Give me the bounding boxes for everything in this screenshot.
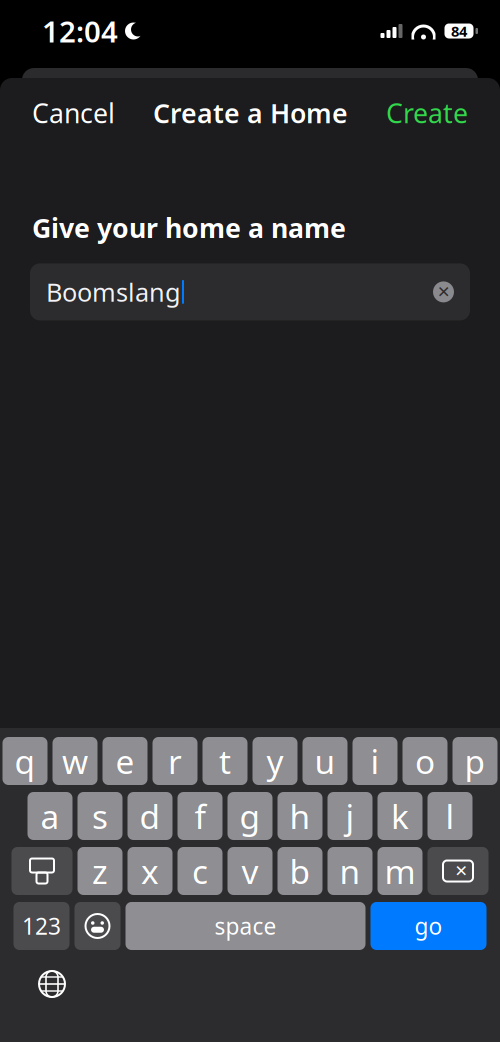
staticText: Boomslang <box>46 275 181 309</box>
button[interactable]: t <box>202 737 247 785</box>
staticText: go <box>414 911 442 941</box>
button[interactable]: Shift <box>11 847 72 895</box>
button[interactable]: Cancel <box>22 87 125 139</box>
button[interactable]: l <box>427 792 472 840</box>
staticText: b <box>289 849 310 893</box>
staticText: r <box>168 739 182 783</box>
staticText: ✕ <box>454 862 467 880</box>
button[interactable]: s <box>77 792 122 840</box>
staticText: ✕ <box>437 283 450 301</box>
staticText: i <box>370 739 379 783</box>
button[interactable]: o <box>402 737 447 785</box>
button[interactable]: b <box>277 847 322 895</box>
button[interactable]: p <box>452 737 497 785</box>
button[interactable]: g <box>227 792 272 840</box>
button[interactable]: Emoji <box>74 902 120 950</box>
staticText: z <box>92 849 108 893</box>
button[interactable]: h <box>277 792 322 840</box>
button[interactable]: Switch keyboard <box>30 966 74 1002</box>
staticText: a <box>40 794 59 838</box>
staticText: v <box>241 849 258 893</box>
button[interactable]: Boomslang <box>30 263 470 320</box>
staticText: 84 <box>451 21 467 41</box>
staticText: j <box>345 794 354 838</box>
button[interactable]: y <box>252 737 297 785</box>
staticText: f <box>194 794 205 838</box>
staticText: x <box>141 849 159 893</box>
staticText: Create <box>386 95 468 131</box>
button[interactable]: q <box>2 737 47 785</box>
button[interactable]: Delete <box>427 847 488 895</box>
button[interactable]: r <box>152 737 197 785</box>
button[interactable]: e <box>102 737 147 785</box>
staticText: 12:04 <box>42 11 118 50</box>
staticText: d <box>139 794 160 838</box>
staticText: s <box>92 794 108 838</box>
button[interactable]: Create <box>376 87 478 139</box>
staticText: Create a Home <box>153 95 348 131</box>
button[interactable]: f <box>177 792 222 840</box>
staticText: n <box>339 849 360 893</box>
button[interactable]: n <box>327 847 372 895</box>
staticText: m <box>384 849 415 893</box>
button[interactable]: x <box>127 847 172 895</box>
staticText: e <box>115 739 134 783</box>
staticText: space <box>214 911 276 941</box>
staticText: h <box>289 794 310 838</box>
staticText: p <box>464 739 485 783</box>
staticText: Give your home a name <box>32 210 346 245</box>
button[interactable]: w <box>52 737 97 785</box>
button[interactable]: d <box>127 792 172 840</box>
button[interactable]: 123 <box>13 902 69 950</box>
staticText: q <box>14 739 35 783</box>
staticText: g <box>239 794 260 838</box>
button[interactable]: k <box>377 792 422 840</box>
button[interactable]: c <box>177 847 222 895</box>
button[interactable]: m <box>377 847 422 895</box>
button[interactable]: a <box>27 792 72 840</box>
staticText: w <box>62 739 88 783</box>
staticText: o <box>415 739 435 783</box>
staticText: u <box>314 739 335 783</box>
staticText: l <box>445 794 454 838</box>
staticText: Cancel <box>32 95 115 131</box>
button[interactable]: go <box>370 902 486 950</box>
button[interactable]: z <box>77 847 122 895</box>
button[interactable]: v <box>227 847 272 895</box>
staticText: k <box>391 794 409 838</box>
staticText: t <box>219 739 231 783</box>
staticText: 123 <box>22 911 61 941</box>
button[interactable]: j <box>327 792 372 840</box>
staticText: c <box>192 849 208 893</box>
staticText: y <box>266 739 283 783</box>
button[interactable]: i <box>352 737 397 785</box>
button[interactable]: space <box>125 902 365 950</box>
button[interactable]: u <box>302 737 347 785</box>
